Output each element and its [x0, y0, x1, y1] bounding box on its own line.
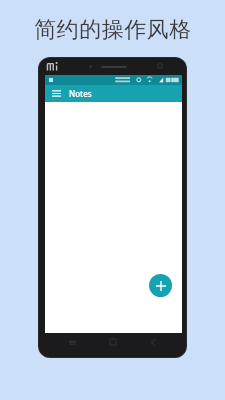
- button[interactable]: Add note: [149, 274, 172, 297]
- button[interactable]: Open navigation drawer: [51, 88, 62, 99]
- button[interactable]: Back: [146, 336, 160, 348]
- button[interactable]: Recent apps: [65, 336, 79, 348]
- staticText: 简约的操作风格: [34, 16, 192, 44]
- staticText: Notes: [69, 88, 92, 99]
- button[interactable]: Home: [106, 336, 120, 348]
- button[interactable]: Open navigation drawer: [45, 85, 182, 102]
